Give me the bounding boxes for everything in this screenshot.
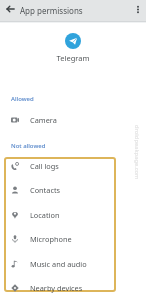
button[interactable]: Contacts xyxy=(0,178,146,202)
button[interactable]: More options xyxy=(131,1,146,16)
button[interactable]: Microphone xyxy=(0,227,146,251)
staticText: Contacts xyxy=(30,185,61,195)
button[interactable]: Camera xyxy=(0,108,146,132)
staticText: Call logs xyxy=(30,161,59,171)
button[interactable]: Location xyxy=(0,203,146,227)
staticText: Location xyxy=(30,210,60,220)
staticText: Telegram xyxy=(0,53,146,63)
button[interactable]: Nearby devices xyxy=(0,276,146,300)
staticText: Camera xyxy=(30,115,57,125)
staticText: Nearby devices xyxy=(30,283,83,293)
staticText: Music and audio xyxy=(30,259,87,269)
staticText: Microphone xyxy=(30,234,72,244)
staticText: App permissions xyxy=(20,5,83,16)
staticText: Not allowed xyxy=(11,142,46,150)
button[interactable]: Music and audio xyxy=(0,252,146,276)
staticText: Allowed xyxy=(11,95,34,103)
staticText: droidpeakpage.com xyxy=(133,125,141,180)
button[interactable]: Back xyxy=(2,1,19,18)
button[interactable]: Call logs xyxy=(0,154,146,178)
